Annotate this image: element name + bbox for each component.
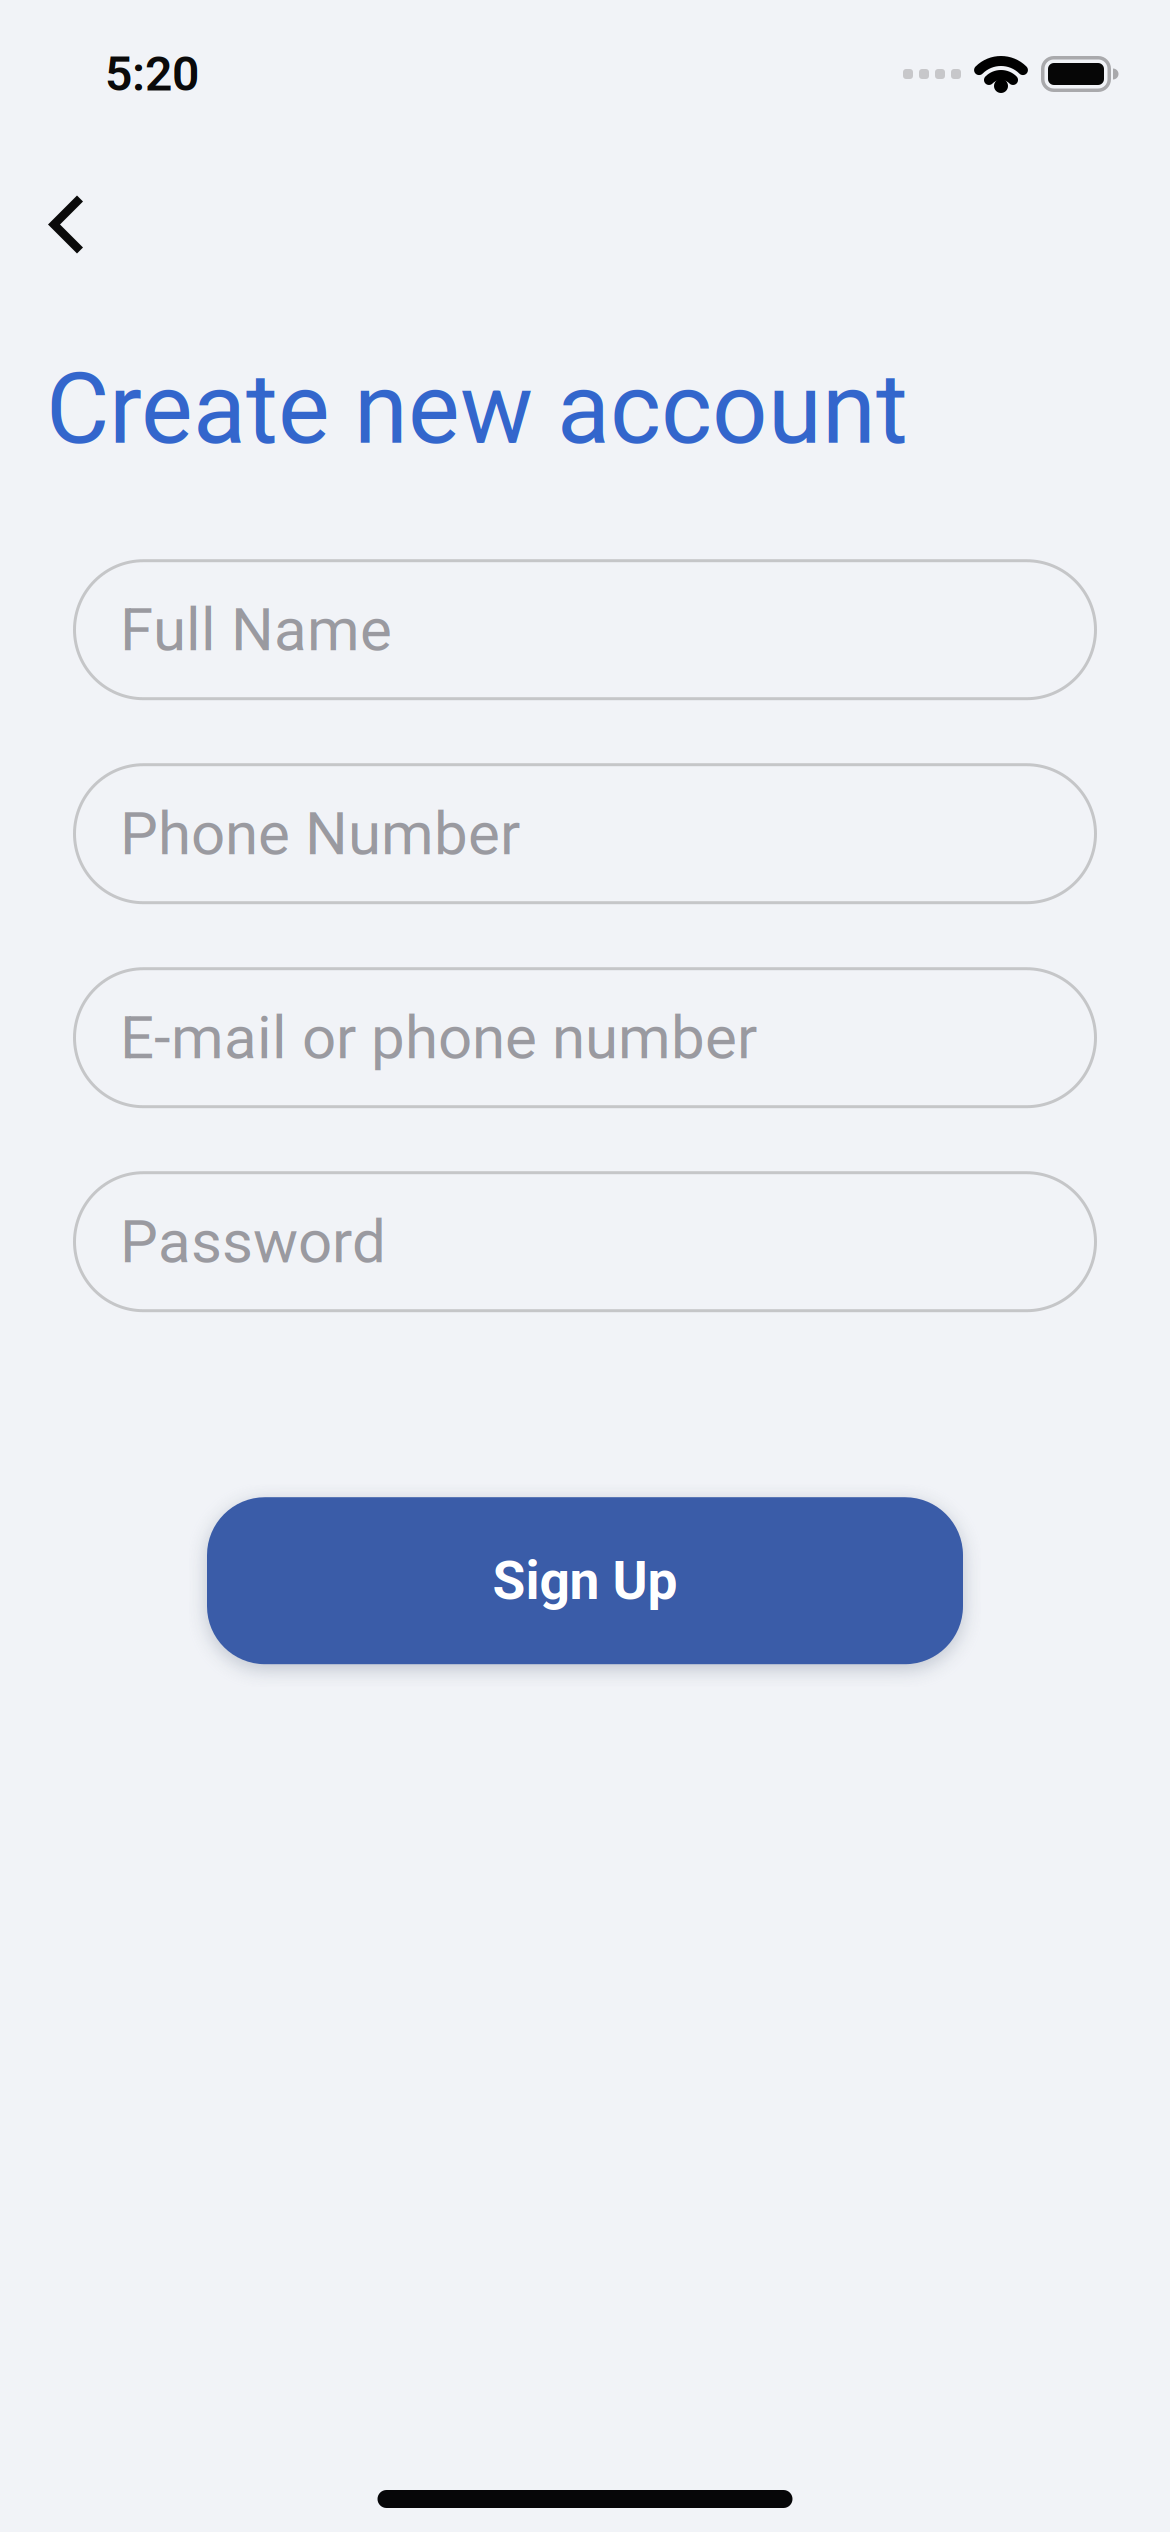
button[interactable]: Phone Number <box>73 763 1097 904</box>
button[interactable]: E-mail or phone number <box>73 967 1097 1108</box>
button[interactable]: Back <box>0 185 84 264</box>
button[interactable]: Sign Up <box>207 1497 963 1664</box>
button[interactable]: Full Name <box>73 559 1097 700</box>
staticText: Full Name <box>120 595 392 664</box>
staticText: Create new account <box>46 354 908 465</box>
staticText: Phone Number <box>120 799 520 868</box>
staticText: E-mail or phone number <box>120 1003 757 1072</box>
staticText: Sign Up <box>492 1550 677 1611</box>
staticText: Password <box>120 1207 386 1276</box>
staticText: 5:20 <box>105 47 199 101</box>
button[interactable]: Password <box>73 1171 1097 1312</box>
